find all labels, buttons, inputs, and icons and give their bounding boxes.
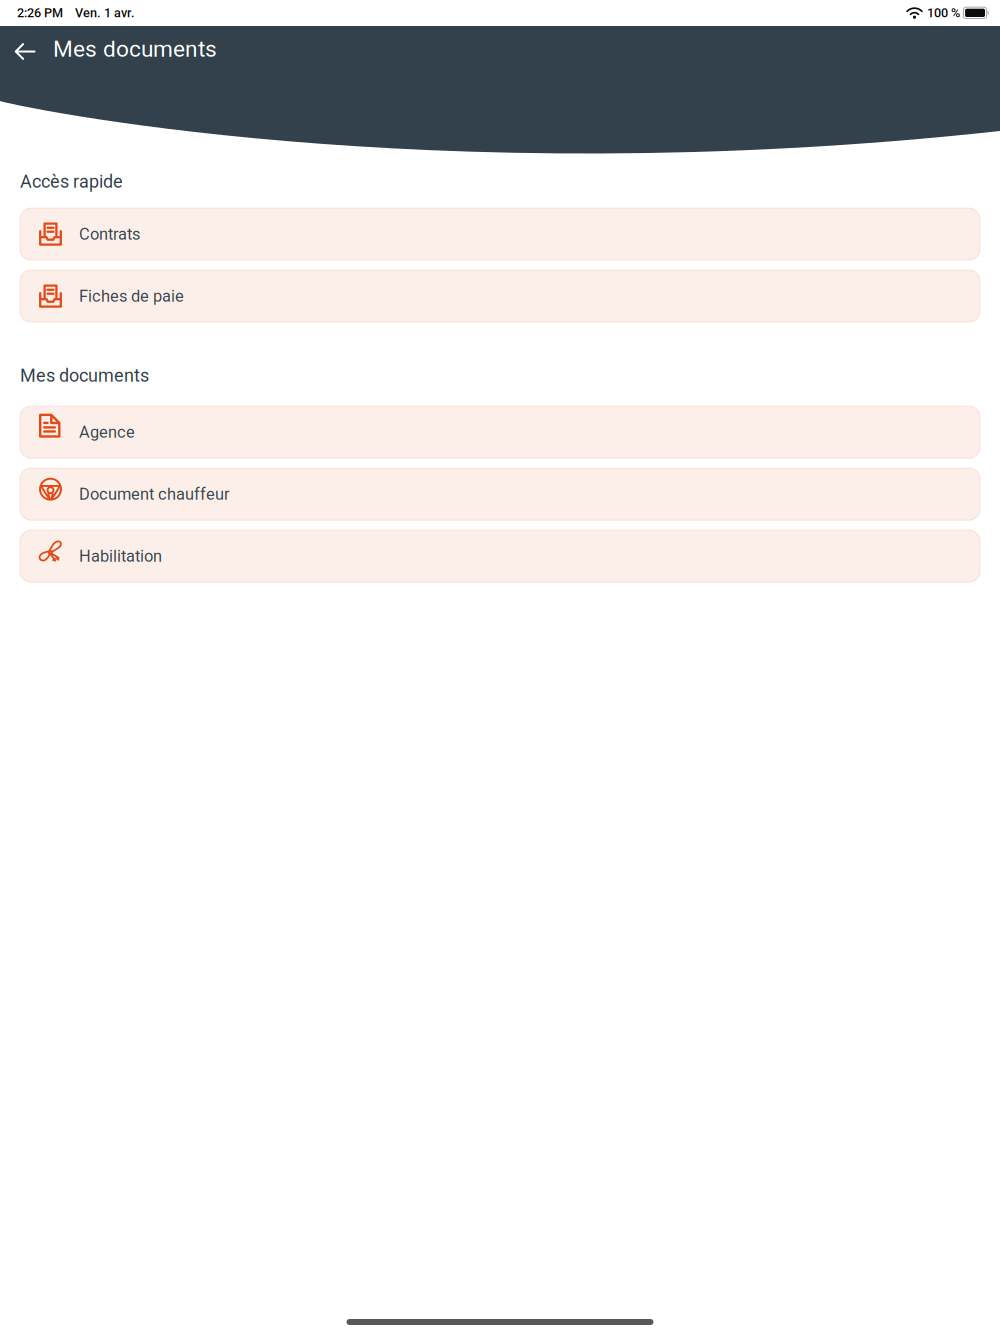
staticText: Mes documents (53, 36, 217, 62)
staticText: Ven. 1 avr. (75, 6, 135, 20)
button[interactable]: Agence (20, 406, 980, 458)
staticText: Fiches de paie (79, 286, 184, 306)
button[interactable]: Contrats (20, 208, 980, 260)
staticText: Document chauffeur (79, 485, 230, 504)
button[interactable]: Document chauffeur (20, 468, 980, 520)
staticText: Agence (79, 423, 135, 442)
button[interactable]: Fiches de paie (20, 270, 980, 322)
staticText: Mes documents (20, 365, 149, 386)
staticText: 100 % (927, 6, 960, 20)
button[interactable]: Habilitation (20, 530, 980, 582)
button[interactable]: Back (3, 27, 47, 71)
staticText: 2:26 PM (17, 6, 63, 20)
staticText: Contrats (79, 224, 140, 244)
staticText: Habilitation (79, 547, 162, 566)
staticText: Accès rapide (20, 171, 123, 192)
